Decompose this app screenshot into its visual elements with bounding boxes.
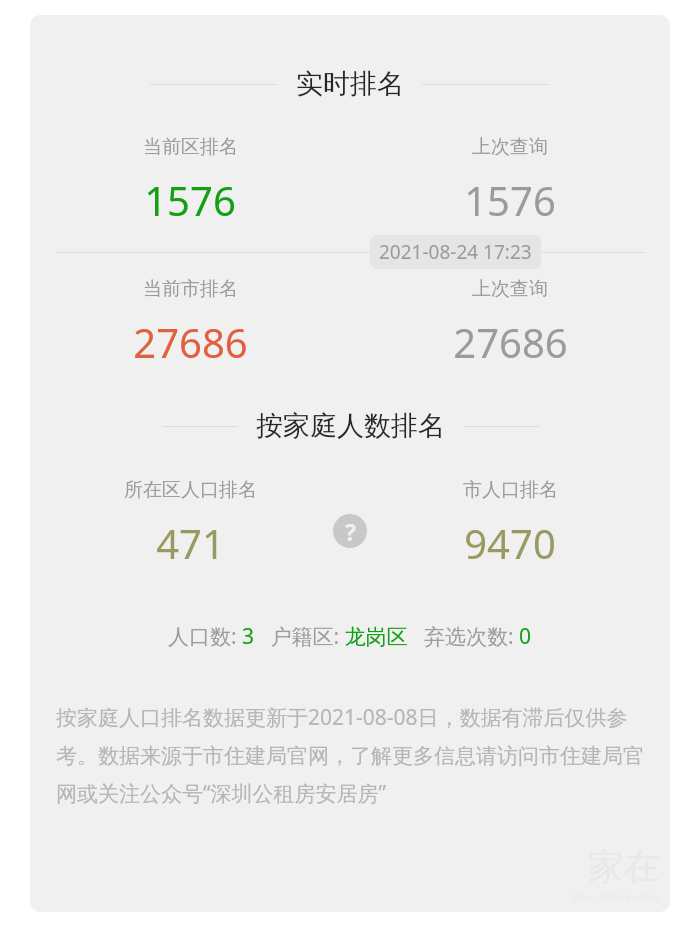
staticText: 1576: [144, 173, 236, 227]
staticText: 按家庭人口排名数据更新于2021-08-08日，数据有滞后仅供参考。数据来源于市…: [56, 703, 644, 807]
staticText: 实时排名: [296, 67, 404, 101]
staticText: 1576: [464, 173, 556, 227]
staticText: 所在区人口排名: [124, 478, 257, 502]
staticText: 上次查询: [472, 277, 548, 301]
button[interactable]: 排名说明帮助: [333, 514, 367, 548]
staticText: 市人口排名: [463, 478, 558, 502]
staticText: 当前市排名: [143, 277, 238, 301]
staticText: 家在: [588, 844, 660, 889]
staticText: 人口数: 3 户籍区: 龙岗区 弃选次数: 0: [168, 622, 532, 651]
staticText: 按家庭人数排名: [256, 409, 445, 443]
staticText: 2021-08-24 17:23: [379, 239, 532, 265]
staticText: 27686: [453, 315, 568, 369]
staticText: 9470: [464, 516, 556, 570]
staticText: 上次查询: [472, 135, 548, 159]
staticText: 当前区排名: [143, 135, 238, 159]
staticText: 27686: [133, 315, 248, 369]
staticText: 471: [156, 516, 225, 570]
staticText: ?: [345, 516, 356, 547]
